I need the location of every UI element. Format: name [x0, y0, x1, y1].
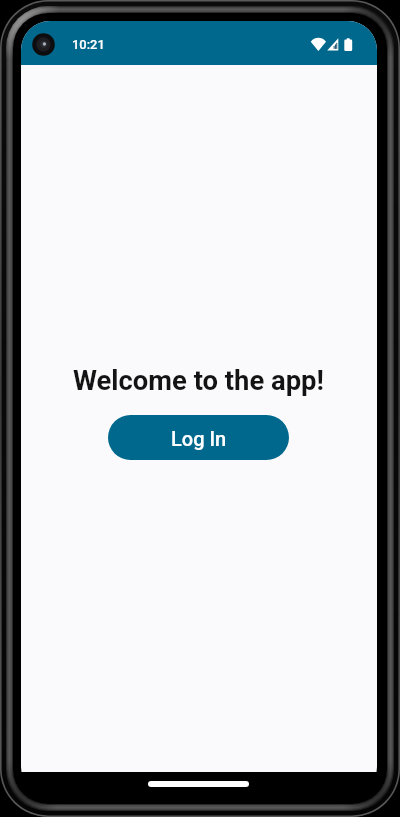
button[interactable]: Log In	[108, 415, 289, 460]
staticText: Welcome to the app!	[73, 365, 324, 397]
staticText: 10:21	[72, 37, 105, 52]
staticText: Log In	[171, 427, 227, 450]
